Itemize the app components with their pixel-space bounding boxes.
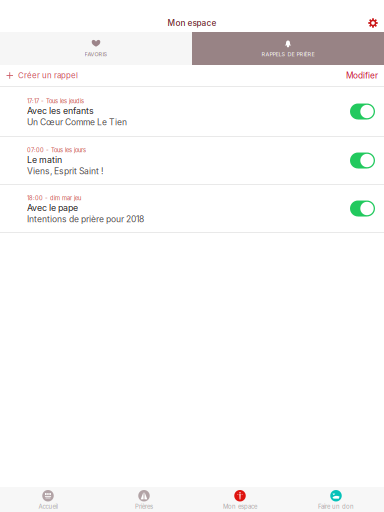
button[interactable]: FAVORIS: [0, 32, 192, 65]
staticText: Avec les enfants: [27, 105, 94, 116]
staticText: Créer un rappel: [18, 71, 78, 80]
button[interactable]: Réglages: [362, 14, 384, 32]
button[interactable]: Modifier: [340, 65, 384, 86]
staticText: RAPPELS DE PRIÈRE: [261, 51, 314, 57]
staticText: Mon espace: [223, 503, 257, 510]
staticText: Avec le pape: [27, 202, 78, 213]
staticText: Mon espace: [167, 18, 216, 28]
staticText: 17:17 - Tous les jeudis: [27, 98, 84, 105]
staticText: Intentions de prière pour 2018: [27, 214, 144, 224]
button[interactable]: Prières: [96, 487, 192, 512]
staticText: Un Cœur Comme Le Tien: [27, 117, 127, 127]
staticText: Prières: [135, 503, 153, 510]
button[interactable]: 17:17 - Tous les jeudis: [0, 87, 384, 136]
button[interactable]: 18:00 - dim mar jeu: [0, 185, 384, 232]
staticText: Faire un don: [318, 503, 354, 510]
staticText: 07:00 - Tous les jours: [27, 147, 86, 154]
staticText: Viens, Esprit Saint !: [27, 166, 103, 176]
staticText: Le matin: [27, 154, 62, 165]
staticText: Modifier: [346, 70, 378, 80]
button[interactable]: 07:00 - Tous les jours: [0, 137, 384, 184]
button[interactable]: Créer un rappel: [0, 65, 84, 86]
staticText: 18:00 - dim mar jeu: [27, 195, 81, 202]
button[interactable]: Accueil: [0, 487, 96, 512]
staticText: Accueil: [38, 503, 57, 510]
staticText: FAVORIS: [84, 51, 107, 58]
button[interactable]: RAPPELS DE PRIÈRE: [192, 32, 384, 65]
button[interactable]: Mon espace: [192, 487, 288, 512]
button[interactable]: Faire un don: [288, 487, 384, 512]
